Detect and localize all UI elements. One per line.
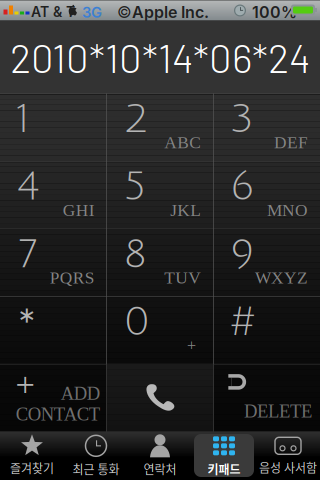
staticText: 키패드 (207, 460, 240, 478)
button[interactable]: 5 (107, 161, 213, 229)
button[interactable]: 키패드 (192, 431, 256, 479)
button[interactable]: * (0, 296, 107, 364)
staticText: 음성 사서함 (259, 459, 317, 476)
staticText: PQRS (50, 268, 95, 287)
staticText: 2 (124, 97, 149, 141)
button[interactable]: 최근 통화 (64, 431, 128, 479)
staticText: 7 (17, 233, 37, 276)
button[interactable]: 즐겨찾기 (0, 431, 64, 479)
staticText: 연락처 (143, 460, 176, 478)
button[interactable]: 7 (0, 229, 107, 296)
staticText: 4 (17, 165, 39, 209)
staticText: + (14, 362, 36, 411)
button[interactable]: # (213, 296, 320, 364)
staticText: 8 (124, 233, 147, 276)
staticText: JKL (170, 200, 201, 220)
staticText: 2010*10*14*06*24 (10, 33, 310, 81)
staticText: MNO (267, 200, 308, 220)
staticText: 5 (124, 165, 146, 209)
staticText: © (117, 2, 132, 22)
staticText: DEF (274, 133, 308, 152)
button[interactable]: Call (107, 364, 213, 431)
button[interactable]: 3 (213, 93, 320, 161)
staticText: 3G (82, 3, 102, 21)
button[interactable]: 0 (107, 296, 213, 364)
staticText: # (230, 301, 255, 343)
staticText: ABC (164, 133, 201, 152)
staticText: GHI (63, 200, 95, 220)
staticText: Apple Inc. (132, 2, 209, 22)
staticText: 100% (252, 2, 297, 22)
button[interactable]: 음성 사서함 (256, 431, 320, 479)
button[interactable]: 9 (213, 229, 320, 296)
staticText: 0 (124, 300, 150, 344)
staticText: TUV (164, 268, 201, 287)
staticText: CONTACT (16, 404, 100, 424)
staticText: WXYZ (255, 268, 308, 287)
button[interactable]: 6 (213, 161, 320, 229)
button[interactable]: DELETE (213, 364, 320, 431)
staticText: 최근 통화 (72, 460, 119, 478)
button[interactable]: + (0, 364, 107, 431)
button[interactable]: 8 (107, 229, 213, 296)
staticText: DELETE (244, 401, 312, 421)
staticText: + (186, 335, 197, 358)
staticText: 3 (230, 97, 253, 141)
staticText: AT & T (31, 3, 75, 20)
button[interactable]: 1 (0, 93, 107, 161)
staticText: ADD (61, 383, 100, 404)
staticText: * (17, 302, 37, 352)
staticText: 즐겨찾기 (10, 459, 54, 477)
staticText: 9 (230, 233, 254, 276)
button[interactable]: 연락처 (128, 431, 192, 479)
button[interactable]: 4 (0, 161, 107, 229)
button[interactable]: 2 (107, 93, 213, 161)
staticText: 6 (230, 165, 254, 209)
staticText: 1 (17, 97, 30, 141)
